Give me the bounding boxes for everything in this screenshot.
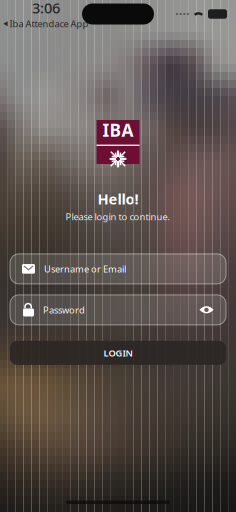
button[interactable]: LOGIN xyxy=(0,341,236,365)
staticText: Iba Attendace App xyxy=(10,17,89,30)
button[interactable]: Username or Email xyxy=(0,254,236,284)
staticText: Hello! xyxy=(97,189,138,208)
staticText: IBA xyxy=(102,119,133,142)
staticText: LOGIN xyxy=(103,347,132,359)
staticText: Username or Email xyxy=(44,263,126,275)
staticText: 3:06 xyxy=(32,0,60,18)
staticText: Please login to continue. xyxy=(65,210,170,223)
button[interactable]: Password xyxy=(0,295,236,325)
staticText: Password xyxy=(43,304,85,316)
